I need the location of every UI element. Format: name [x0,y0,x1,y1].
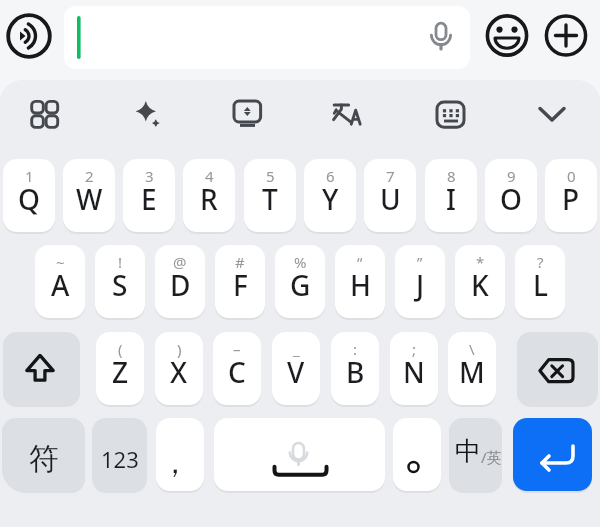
button[interactable]: @ [155,245,205,318]
staticText: O [500,180,522,218]
staticText: 4 [205,166,214,186]
button[interactable]: ? [515,245,565,318]
button[interactable] [223,91,271,139]
staticText: L [533,266,548,304]
staticText: A [51,266,70,304]
button[interactable]: 123 [92,418,147,491]
staticText: 3 [145,166,154,186]
button[interactable] [517,332,598,405]
staticText: Q [18,180,40,218]
staticText: 7 [386,166,395,186]
button[interactable] [393,418,441,491]
staticText: 符 [29,440,59,478]
staticText: E [141,180,157,218]
button[interactable] [544,14,588,58]
button[interactable] [325,91,373,139]
staticText: U [380,180,401,218]
staticText: _ [293,339,300,359]
staticText: I [446,180,456,218]
button[interactable]: _ [272,332,320,405]
button[interactable]: ; [390,332,438,405]
button[interactable] [3,332,80,405]
staticText: X [170,353,188,391]
button[interactable] [513,418,592,491]
button[interactable] [325,91,373,139]
staticText: D [170,266,191,304]
staticText: ” [417,252,423,272]
button[interactable]: 符 [2,418,85,491]
button[interactable] [122,91,170,139]
staticText: G [290,266,311,304]
staticText: ! [118,252,123,272]
staticText: 5 [266,166,275,186]
button[interactable]: # [215,245,265,318]
staticText: K [471,266,489,304]
button[interactable]: % [275,245,325,318]
button[interactable] [426,91,474,139]
staticText: 中 [455,435,481,468]
staticText: N [403,353,425,391]
button[interactable]: * [455,245,505,318]
staticText: Y [322,180,339,218]
staticText: 123 [101,444,139,474]
staticText: ) [177,339,182,359]
staticText: C [228,353,246,391]
button[interactable]: \ [448,332,496,405]
button[interactable]: ! [95,245,145,318]
staticText: ; [412,339,417,359]
staticText: M [459,353,485,391]
staticText: V [287,353,305,391]
staticText: ， [160,444,190,482]
button[interactable]: 3 [123,159,175,232]
staticText: J [416,266,425,304]
button[interactable] [7,14,51,58]
button[interactable] [214,418,385,491]
staticText: * [476,252,485,272]
staticText: \ [469,339,475,359]
staticText: 2 [85,166,94,186]
button[interactable]: 8 [425,159,477,232]
button[interactable]: 4 [183,159,235,232]
staticText: B [346,353,365,391]
button[interactable] [64,6,470,69]
staticText: 1 [25,166,34,186]
button[interactable]: 5 [244,159,296,232]
staticText: 6 [326,166,335,186]
button[interactable]: 9 [485,159,537,232]
button[interactable]: 2 [63,159,115,232]
button[interactable] [485,14,529,58]
button[interactable]: : [331,332,379,405]
staticText: # [235,252,245,272]
button[interactable]: 1 [3,159,55,232]
button[interactable]: ( [96,332,144,405]
staticText: ~ [56,252,65,272]
button[interactable] [528,91,576,139]
staticText: T [262,180,278,218]
staticText: % [294,252,307,272]
button[interactable]: 6 [304,159,356,232]
button[interactable]: “ [335,245,385,318]
staticText: – [233,339,241,359]
button[interactable]: ) [155,332,203,405]
button[interactable]: 7 [364,159,416,232]
staticText: @ [173,252,187,272]
button[interactable]: ， [156,418,204,491]
staticText: “ [357,252,363,272]
staticText: /英 [481,447,502,467]
staticText: : [353,339,358,359]
button[interactable]: 0 [545,159,597,232]
button[interactable]: ~ [35,245,85,318]
staticText: ? [537,252,544,272]
staticText: Z [112,353,129,391]
button[interactable] [21,91,69,139]
button[interactable]: – [213,332,261,405]
staticText: H [350,266,371,304]
staticText: 9 [507,166,516,186]
staticText: 0 [567,166,576,186]
button[interactable]: 中 [449,418,502,491]
button[interactable]: ” [395,245,445,318]
staticText: W [76,180,103,218]
staticText: 8 [447,166,456,186]
staticText: R [200,180,218,218]
staticText: P [562,180,580,218]
